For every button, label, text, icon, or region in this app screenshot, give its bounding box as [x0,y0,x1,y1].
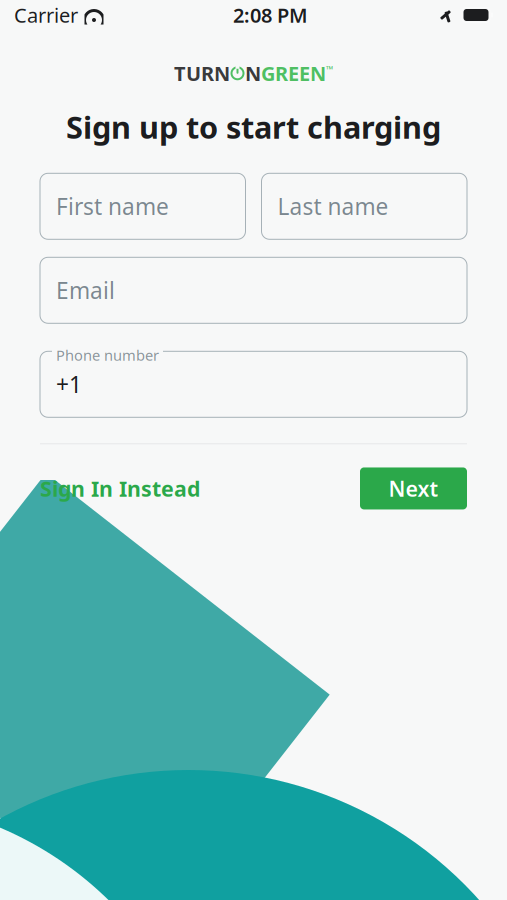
staticText: Sign up to start charging [66,107,441,147]
staticText: First name [56,191,169,221]
staticText: Last name [277,191,388,221]
staticText: TURN [174,60,230,87]
staticText: ™ [326,63,333,75]
staticText: Sign In Instead [40,474,200,503]
button[interactable]: +1 [40,345,467,417]
staticText: Phone number [56,345,159,365]
staticText: Email [56,275,115,305]
staticText: N [245,60,261,87]
button[interactable]: Last name [261,173,467,239]
button[interactable]: Email [40,257,467,323]
button[interactable]: Sign In Instead [40,464,200,513]
staticText: Next [388,474,438,503]
staticText: +1 [56,369,82,399]
button[interactable]: Next [360,467,467,509]
button[interactable]: First name [40,173,245,239]
staticText: GREEN [261,60,326,87]
staticText: Carrier [14,2,78,28]
staticText: 2:08 PM [233,2,308,28]
